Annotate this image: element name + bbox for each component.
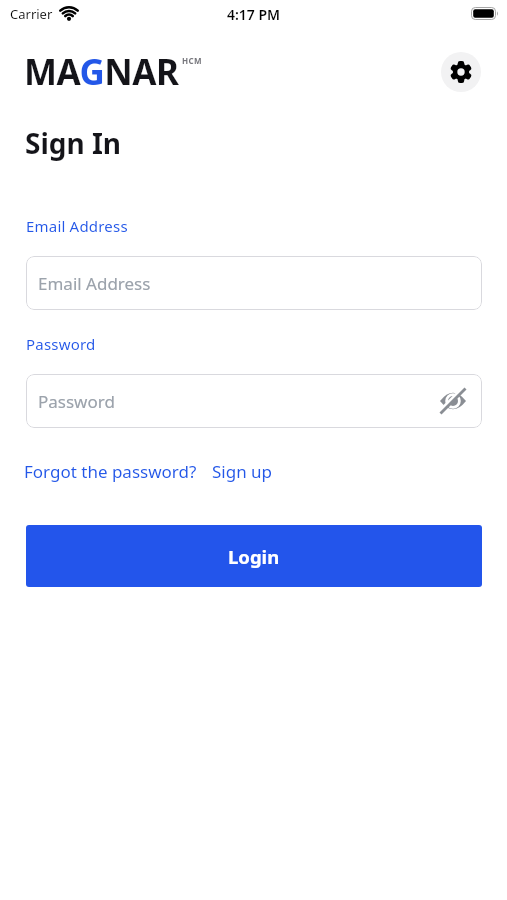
button[interactable]: Sign up xyxy=(212,460,273,483)
button[interactable] xyxy=(440,388,466,414)
staticText: Password xyxy=(38,390,115,413)
button[interactable]: Login xyxy=(26,525,482,587)
staticText: Sign In xyxy=(25,124,122,162)
staticText: Email Address xyxy=(38,272,151,295)
staticText: HCM xyxy=(182,55,202,66)
staticText: 4:17 PM xyxy=(0,5,507,24)
button[interactable]: Forgot the password? xyxy=(24,460,197,483)
staticText: Login xyxy=(228,544,280,569)
button[interactable] xyxy=(441,52,481,92)
button[interactable]: Email Address xyxy=(26,256,482,310)
staticText: Carrier xyxy=(10,5,53,23)
button[interactable]: Password xyxy=(26,374,482,428)
staticText: Email Address xyxy=(26,216,128,236)
staticText: Password xyxy=(26,334,96,354)
staticText: MAGNAR xyxy=(24,48,179,96)
